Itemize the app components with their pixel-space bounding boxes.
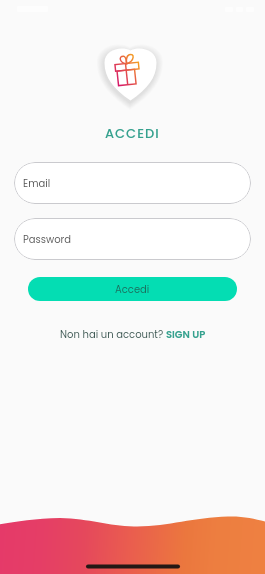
staticText: Non hai un account? SIGN UP [60, 327, 206, 341]
staticText: Password [23, 232, 72, 246]
staticText: Accedi [115, 282, 150, 296]
staticText: Email [23, 176, 51, 190]
staticText: ACCEDI [105, 124, 160, 142]
button[interactable]: Non hai un account? SIGN UP [60, 327, 206, 341]
button[interactable]: Email [14, 162, 251, 204]
button[interactable]: Password [14, 218, 251, 260]
button[interactable]: Accedi [28, 277, 237, 301]
